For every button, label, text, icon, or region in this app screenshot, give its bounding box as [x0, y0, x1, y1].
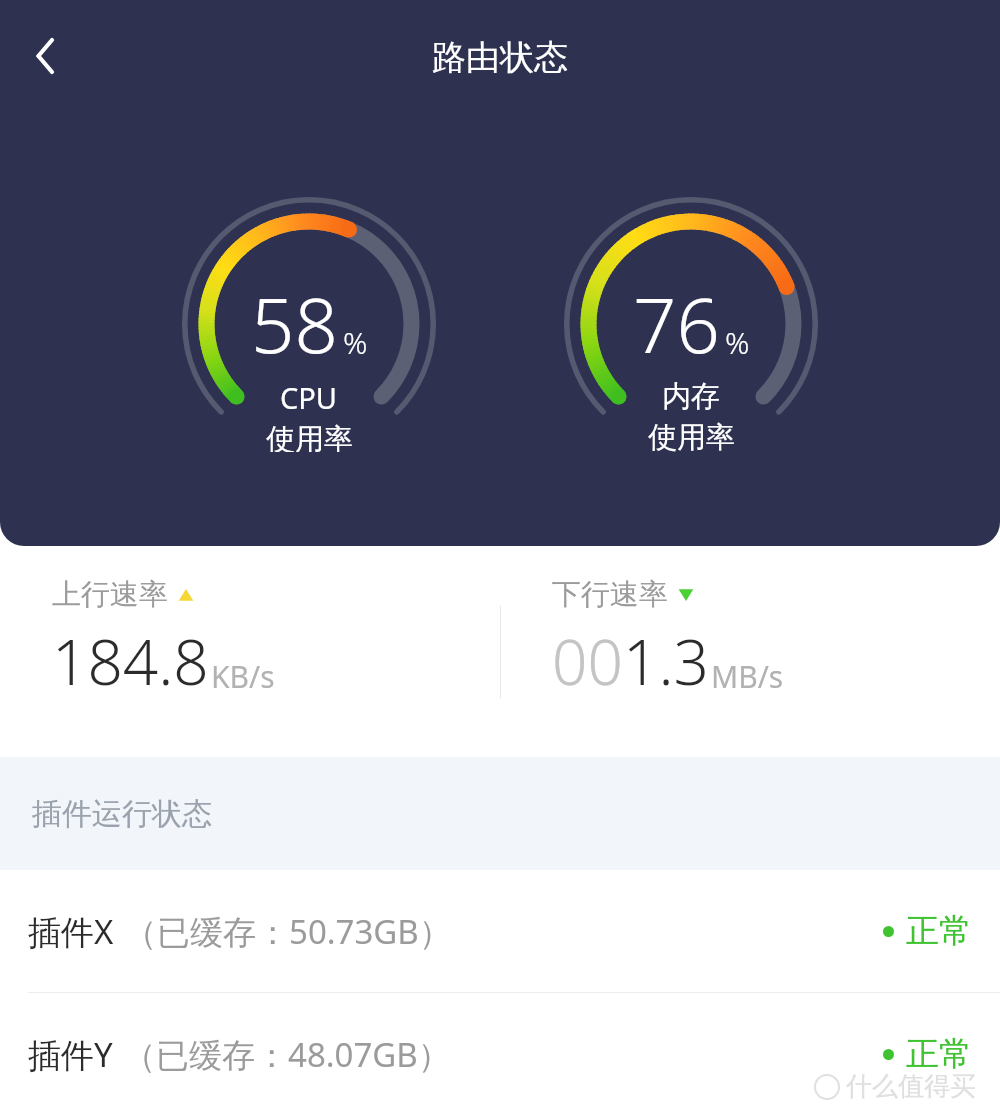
staticText: MB/s — [711, 656, 784, 697]
staticText: 使用率 — [648, 419, 735, 452]
staticText: 路由状态 — [0, 36, 1000, 79]
button[interactable]: 下行速率 — [500, 546, 1000, 757]
staticText: 184.8 — [52, 619, 209, 703]
button[interactable]: 上行速率 — [0, 546, 500, 757]
staticText: 00 — [552, 619, 623, 703]
staticText: 插件X — [28, 909, 114, 954]
staticText: 插件Y — [28, 1032, 113, 1077]
staticText: 内存 — [662, 378, 720, 415]
staticText: 插件运行状态 — [32, 795, 212, 833]
staticText: 使用率 — [266, 421, 353, 452]
staticText: （已缓存：48.07GB） — [123, 1032, 451, 1077]
staticText: 58 — [251, 272, 338, 376]
staticText: 什么值得买 — [846, 1070, 976, 1103]
staticText: 上行速率 — [52, 576, 168, 613]
staticText: CPU — [280, 378, 338, 417]
staticText: 1.3 — [623, 619, 709, 703]
staticText: % — [343, 322, 368, 363]
staticText: 76 — [633, 272, 720, 376]
button[interactable]: Back — [14, 22, 82, 90]
staticText: 下行速率 — [552, 576, 668, 613]
staticText: % — [725, 322, 750, 363]
staticText: 正常 — [906, 1033, 972, 1075]
staticText: 正常 — [906, 910, 972, 952]
button[interactable]: 插件Y — [0, 993, 1000, 1115]
staticText: （已缓存：50.73GB） — [124, 909, 452, 954]
button[interactable]: 插件X — [0, 870, 1000, 992]
staticText: KB/s — [211, 656, 275, 697]
